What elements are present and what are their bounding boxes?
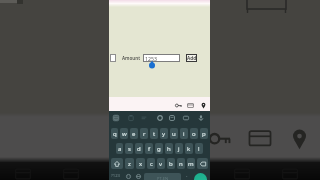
staticText: k: [187, 145, 191, 153]
staticText: o: [192, 130, 196, 138]
button[interactable]: y: [160, 128, 168, 139]
staticText: q: [113, 130, 117, 138]
button[interactable]: f: [145, 143, 153, 154]
button[interactable]: .: [183, 171, 191, 179]
staticText: n: [179, 160, 183, 168]
staticText: Add: [187, 55, 197, 62]
button[interactable]: Apps: [111, 113, 120, 122]
button[interactable]: z: [125, 158, 134, 169]
staticText: d: [137, 145, 141, 153]
staticText: r: [143, 130, 146, 138]
staticText: p: [202, 130, 206, 138]
button[interactable]: u: [170, 128, 178, 139]
staticText: i: [183, 130, 185, 138]
button[interactable]: Settings: [155, 113, 164, 122]
button[interactable]: i: [180, 128, 188, 139]
button[interactable]: Emoji: [124, 172, 132, 180]
button[interactable]: Stickers: [167, 113, 176, 122]
staticText: s: [128, 145, 131, 153]
staticText: t: [153, 130, 156, 138]
button[interactable]: l: [195, 143, 203, 154]
staticText: ?123: [111, 173, 121, 179]
staticText: c: [150, 160, 153, 168]
button[interactable]: Add: [186, 54, 197, 62]
staticText: a: [118, 145, 122, 153]
staticText: v: [159, 160, 163, 168]
staticText: w: [122, 130, 127, 138]
staticText: f: [148, 145, 151, 153]
button[interactable]: t: [150, 128, 158, 139]
button[interactable]: w: [120, 128, 128, 139]
button[interactable]: v: [157, 158, 165, 169]
button[interactable]: Voice input: [196, 113, 205, 122]
button[interactable]: ?123: [109, 171, 122, 180]
staticText: g: [157, 145, 161, 153]
button[interactable]: s: [125, 143, 133, 154]
button[interactable]: g: [155, 143, 163, 154]
button[interactable]: o: [190, 128, 198, 139]
button[interactable]: a: [116, 143, 123, 154]
staticText: .: [186, 171, 188, 179]
button[interactable]: p: [200, 128, 208, 139]
button[interactable]: k: [185, 143, 193, 154]
button[interactable]: Clipboard: [126, 113, 135, 122]
button[interactable]: x: [136, 158, 145, 169]
staticText: j: [178, 145, 180, 153]
staticText: 1253: [145, 55, 157, 62]
button[interactable]: Language: [134, 172, 142, 180]
button[interactable]: Address: [199, 101, 208, 110]
staticText: u: [172, 130, 176, 138]
button[interactable]: e: [130, 128, 138, 139]
button[interactable]: c: [147, 158, 155, 169]
staticText: Amount: [122, 55, 141, 61]
staticText: h: [167, 145, 171, 153]
staticText: z: [128, 160, 131, 168]
staticText: b: [169, 160, 173, 168]
button[interactable]: Text edit: [139, 113, 148, 122]
button[interactable]: n: [177, 158, 185, 169]
staticText: y: [162, 130, 166, 138]
button[interactable]: 1253: [143, 54, 180, 62]
button[interactable]: GIF: [181, 113, 190, 122]
staticText: l: [198, 145, 200, 153]
staticText: x: [139, 160, 143, 168]
button[interactable]: Enter: [194, 173, 207, 180]
button[interactable]: Space: [144, 173, 181, 180]
button[interactable]: Shift: [111, 158, 123, 169]
button[interactable]: r: [140, 128, 148, 139]
button[interactable]: d: [135, 143, 143, 154]
button[interactable]: Backspace: [197, 158, 208, 169]
staticText: m: [188, 160, 194, 168]
staticText: PT-EN: [157, 176, 169, 180]
staticText: e: [132, 130, 136, 138]
button[interactable]: q: [111, 128, 118, 139]
button[interactable]: Password: [174, 101, 183, 110]
button[interactable]: b: [167, 158, 175, 169]
button[interactable]: m: [187, 158, 195, 169]
button[interactable]: h: [165, 143, 173, 154]
button[interactable]: Payment card: [186, 101, 195, 110]
button[interactable]: j: [175, 143, 183, 154]
